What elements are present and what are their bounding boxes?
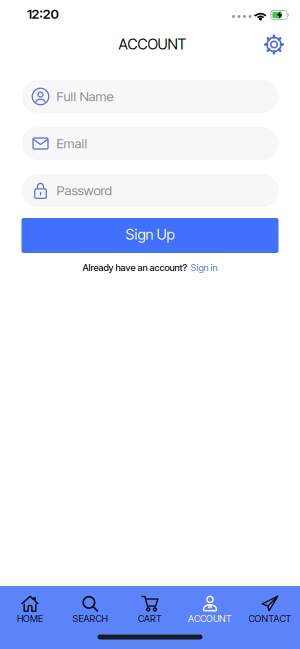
button[interactable]: HOME <box>0 595 62 624</box>
staticText: Password <box>56 183 111 198</box>
staticText: HOME <box>17 613 43 624</box>
button[interactable]: SEARCH <box>58 595 122 624</box>
button[interactable]: Email <box>21 127 278 160</box>
button[interactable]: CONTACT <box>238 595 300 624</box>
button[interactable]: CART <box>118 595 182 624</box>
staticText: Full Name <box>56 89 113 104</box>
staticText: Sign in <box>190 262 217 273</box>
button[interactable]: Sign Up <box>21 218 278 253</box>
button[interactable]: Password <box>21 174 278 207</box>
staticText: 12:20 <box>27 6 58 22</box>
button[interactable]: Sign in <box>190 262 217 273</box>
staticText: Sign Up <box>125 226 174 243</box>
staticText: SEARCH <box>72 613 107 624</box>
staticText: ACCOUNT <box>118 35 186 53</box>
staticText: CONTACT <box>248 613 291 624</box>
button[interactable]: ACCOUNT <box>178 595 242 624</box>
staticText: Already have an account? <box>82 262 187 273</box>
staticText: CART <box>138 613 162 624</box>
button[interactable] <box>264 34 284 54</box>
button[interactable]: Full Name <box>21 80 278 113</box>
staticText: Email <box>56 136 87 151</box>
staticText: ACCOUNT <box>188 613 232 624</box>
